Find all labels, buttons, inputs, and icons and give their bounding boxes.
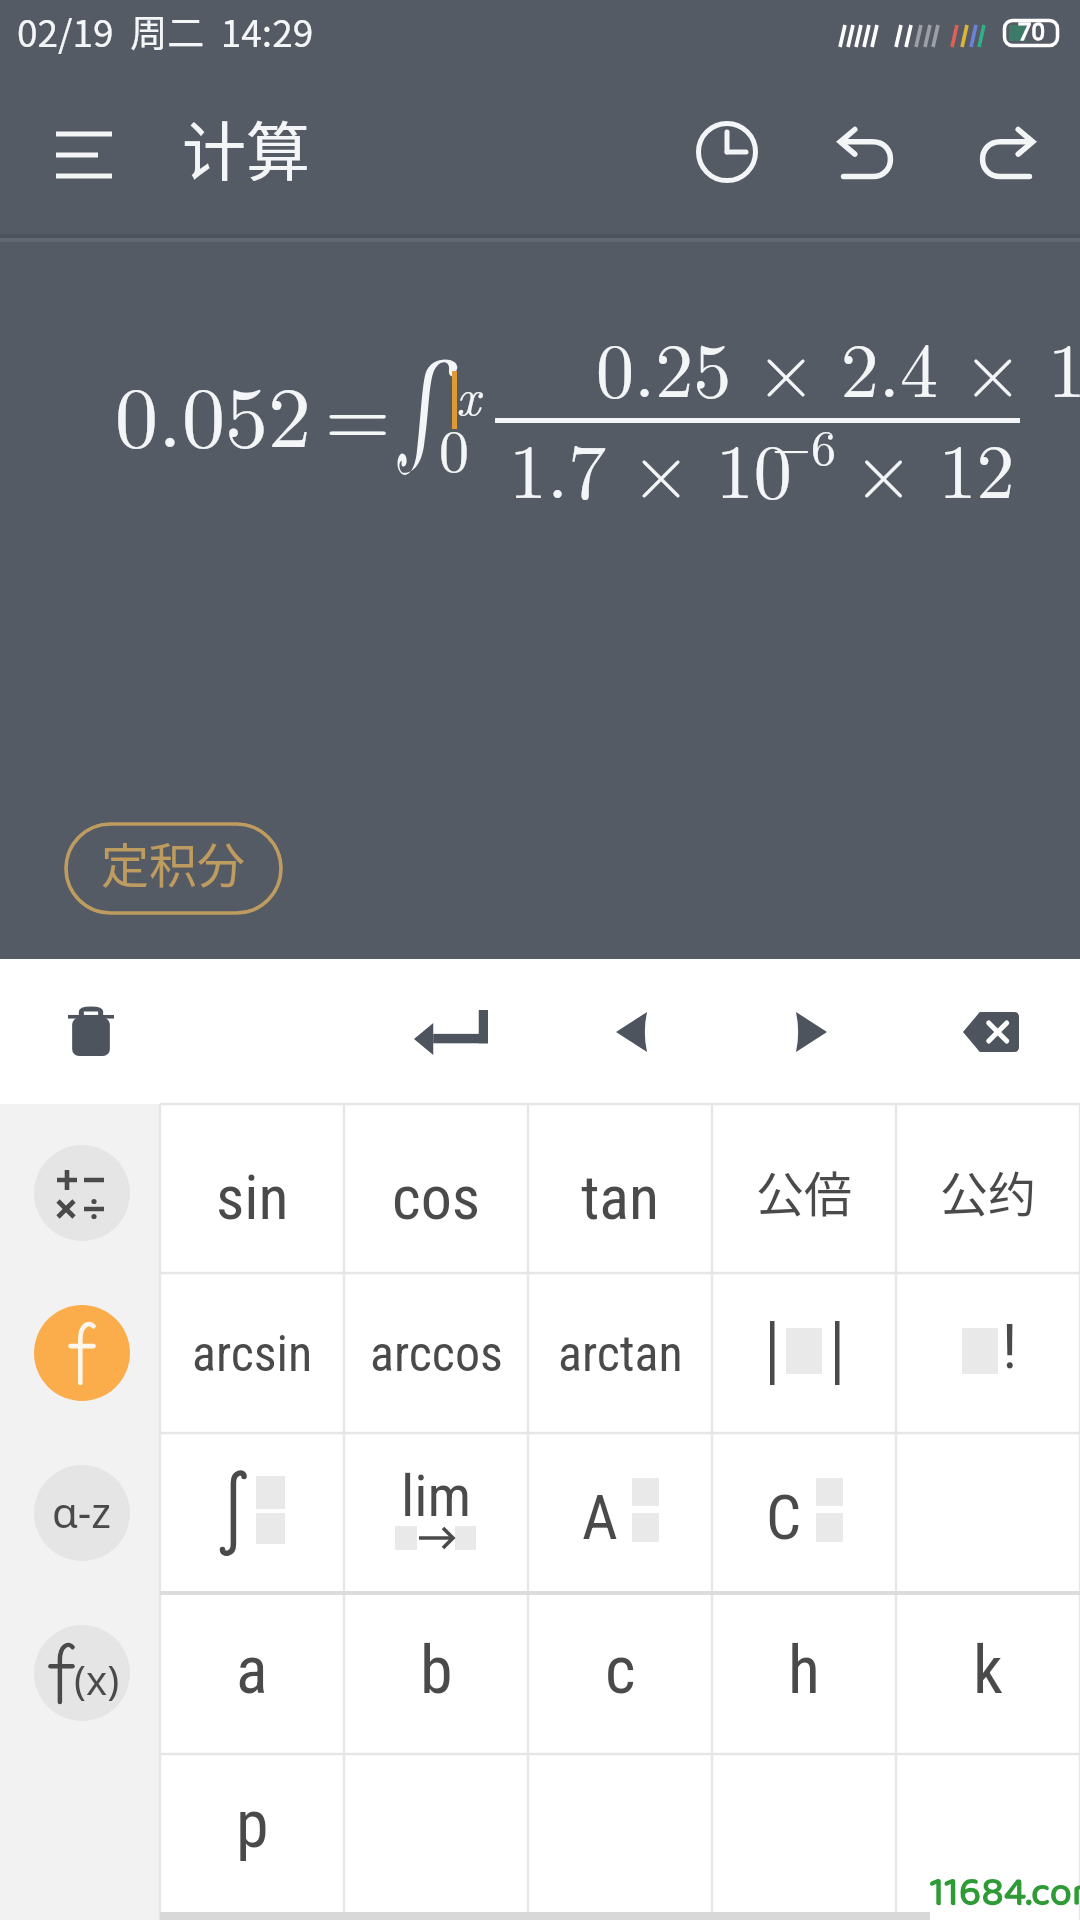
staticText: (x) <box>74 1652 120 1706</box>
button[interactable]: Basic operators <box>34 1145 130 1241</box>
button[interactable]: b <box>344 1593 528 1754</box>
staticText: lim <box>401 1462 472 1530</box>
staticText: c <box>605 1632 636 1709</box>
button[interactable]: a <box>160 1593 344 1754</box>
button[interactable]: arctan <box>528 1273 712 1433</box>
staticText: 70 <box>1018 18 1045 46</box>
button[interactable]: 公倍 <box>712 1104 896 1273</box>
staticText: 计算 <box>182 101 310 194</box>
button[interactable]: h <box>712 1593 896 1754</box>
staticText: 1.7 × 10 <box>509 412 792 520</box>
staticText: 公倍 <box>756 1156 853 1226</box>
staticText: sin <box>216 1161 289 1234</box>
staticText: 公约 <box>940 1156 1037 1226</box>
button[interactable]: blank key <box>896 1433 1080 1593</box>
staticText: C <box>766 1481 802 1551</box>
staticText: tan <box>581 1161 660 1234</box>
staticText: × 12 <box>854 412 1015 520</box>
staticText: 11684.com <box>930 1861 1080 1920</box>
staticText: 02/19 周二 14:29 <box>17 4 314 58</box>
staticText: b <box>420 1632 453 1709</box>
button[interactable]: blank key <box>344 1754 528 1920</box>
button[interactable]: blank key <box>712 1754 896 1920</box>
button[interactable]: tan <box>528 1104 712 1273</box>
button[interactable]: limit <box>344 1433 528 1593</box>
staticText: ! <box>1002 1310 1018 1376</box>
staticText: cos <box>392 1161 481 1234</box>
staticText: arccos <box>370 1325 503 1384</box>
button[interactable]: Letters a to z <box>34 1465 130 1561</box>
button[interactable]: integral <box>160 1433 344 1593</box>
button[interactable]: absolute value <box>712 1273 896 1433</box>
staticText: arctan <box>558 1325 683 1384</box>
staticText: 0.25 × 2.4 × 1 <box>596 311 1080 419</box>
staticText: a <box>236 1632 268 1709</box>
staticText: 0.052 <box>115 350 311 472</box>
button[interactable]: User functions <box>34 1625 130 1721</box>
button[interactable]: blank key <box>896 1754 1080 1920</box>
button[interactable]: permutation A <box>528 1433 712 1593</box>
staticText: x <box>456 356 481 430</box>
button[interactable]: Enter <box>392 987 510 1077</box>
staticText: k <box>973 1632 1003 1709</box>
button[interactable]: c <box>528 1593 712 1754</box>
button[interactable]: 定积分 <box>64 822 283 915</box>
button[interactable]: Functions <box>34 1305 130 1401</box>
button[interactable]: cos <box>344 1104 528 1273</box>
button[interactable]: p <box>160 1754 344 1920</box>
button[interactable]: History <box>679 104 775 200</box>
button[interactable]: k <box>896 1593 1080 1754</box>
button[interactable]: 公约 <box>896 1104 1080 1273</box>
staticText: h <box>788 1632 820 1709</box>
staticText: A <box>582 1481 618 1551</box>
button[interactable]: combination C <box>712 1433 896 1593</box>
staticText: arcsin <box>192 1325 313 1384</box>
staticText: ɑ-z <box>52 1483 112 1540</box>
button[interactable]: Backspace <box>936 987 1046 1077</box>
staticText: p <box>236 1786 269 1863</box>
button[interactable]: arccos <box>344 1273 528 1433</box>
button[interactable]: Move right <box>768 987 854 1077</box>
button[interactable]: factorial <box>896 1273 1080 1433</box>
button[interactable]: Clear all <box>48 985 134 1079</box>
staticText: −6 <box>772 409 836 480</box>
staticText: 0 <box>439 404 469 489</box>
staticText: 定积分 <box>101 827 246 897</box>
button[interactable]: blank key <box>528 1754 712 1920</box>
button[interactable]: Undo <box>820 105 916 201</box>
button[interactable]: Redo <box>957 105 1053 201</box>
button[interactable]: Menu <box>40 116 120 196</box>
staticText: = <box>325 351 391 470</box>
button[interactable]: arcsin <box>160 1273 344 1433</box>
button[interactable]: sin <box>160 1104 344 1273</box>
button[interactable]: Move left <box>588 987 674 1077</box>
